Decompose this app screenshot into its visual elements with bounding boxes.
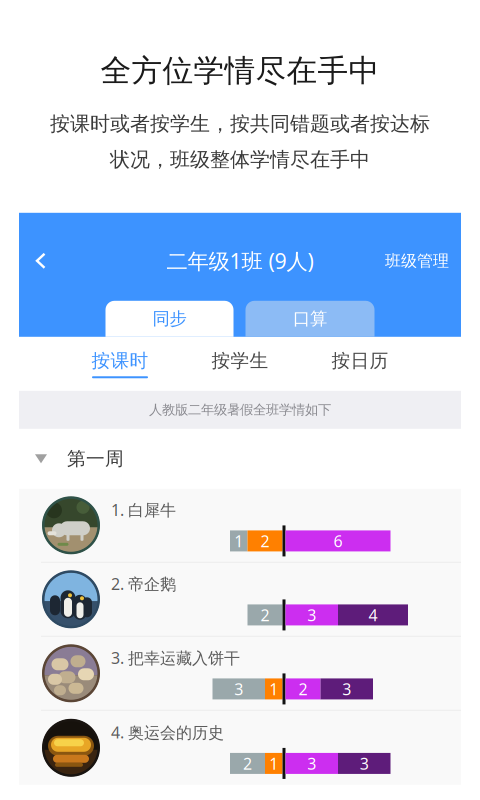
staticText: 3 <box>307 753 316 774</box>
button[interactable]: Back <box>21 239 61 283</box>
button[interactable]: 2. 帝企鹅 <box>19 563 461 637</box>
staticText: 全方位学情尽在手中 <box>100 52 379 90</box>
staticText: 按课时 <box>91 349 148 372</box>
staticText: 按学生 <box>211 349 268 372</box>
staticText: 3 <box>307 604 316 625</box>
staticText: 二年级1班 (9人) <box>166 247 313 275</box>
staticText: 1. 白犀牛 <box>111 499 176 520</box>
staticText: 4 <box>368 604 377 625</box>
button[interactable]: 口算 <box>245 301 374 337</box>
button[interactable]: 第一周 <box>0 429 480 489</box>
staticText: 2 <box>298 678 307 699</box>
button[interactable]: 班级管理 <box>375 242 459 280</box>
staticText: 3 <box>342 678 351 699</box>
button[interactable]: 按日历 <box>331 349 388 378</box>
staticText: 1 <box>269 753 278 774</box>
staticText: 1 <box>234 530 243 551</box>
staticText: 3 <box>234 678 243 699</box>
staticText: 2. 帝企鹅 <box>111 573 176 594</box>
staticText: 班级管理 <box>385 251 449 271</box>
button[interactable]: 按学生 <box>211 349 268 378</box>
staticText: 6 <box>333 530 342 551</box>
staticText: 1 <box>269 678 278 699</box>
staticText: 2 <box>243 753 252 774</box>
staticText: 3. 把幸运藏入饼干 <box>111 647 240 668</box>
staticText: 2 <box>260 530 269 551</box>
staticText: 状况，班级整体学情尽在手中 <box>110 147 370 172</box>
staticText: 2 <box>260 604 269 625</box>
button[interactable]: 1. 白犀牛 <box>19 489 461 563</box>
staticText: 3 <box>360 753 369 774</box>
button[interactable]: 3. 把幸运藏入饼干 <box>19 637 461 711</box>
staticText: 按日历 <box>331 349 388 372</box>
button[interactable]: 4. 奥运会的历史 <box>19 711 461 785</box>
staticText: 按课时或者按学生，按共同错题或者按达标 <box>50 112 430 136</box>
staticText: 人教版二年级暑假全班学情如下 <box>149 402 331 418</box>
button[interactable]: 按课时 <box>91 349 148 378</box>
staticText: 4. 奥运会的历史 <box>111 722 224 743</box>
staticText: 同步 <box>152 308 186 329</box>
staticText: 第一周 <box>67 447 124 470</box>
button[interactable]: 同步 <box>105 301 233 337</box>
staticText: 口算 <box>293 308 327 329</box>
